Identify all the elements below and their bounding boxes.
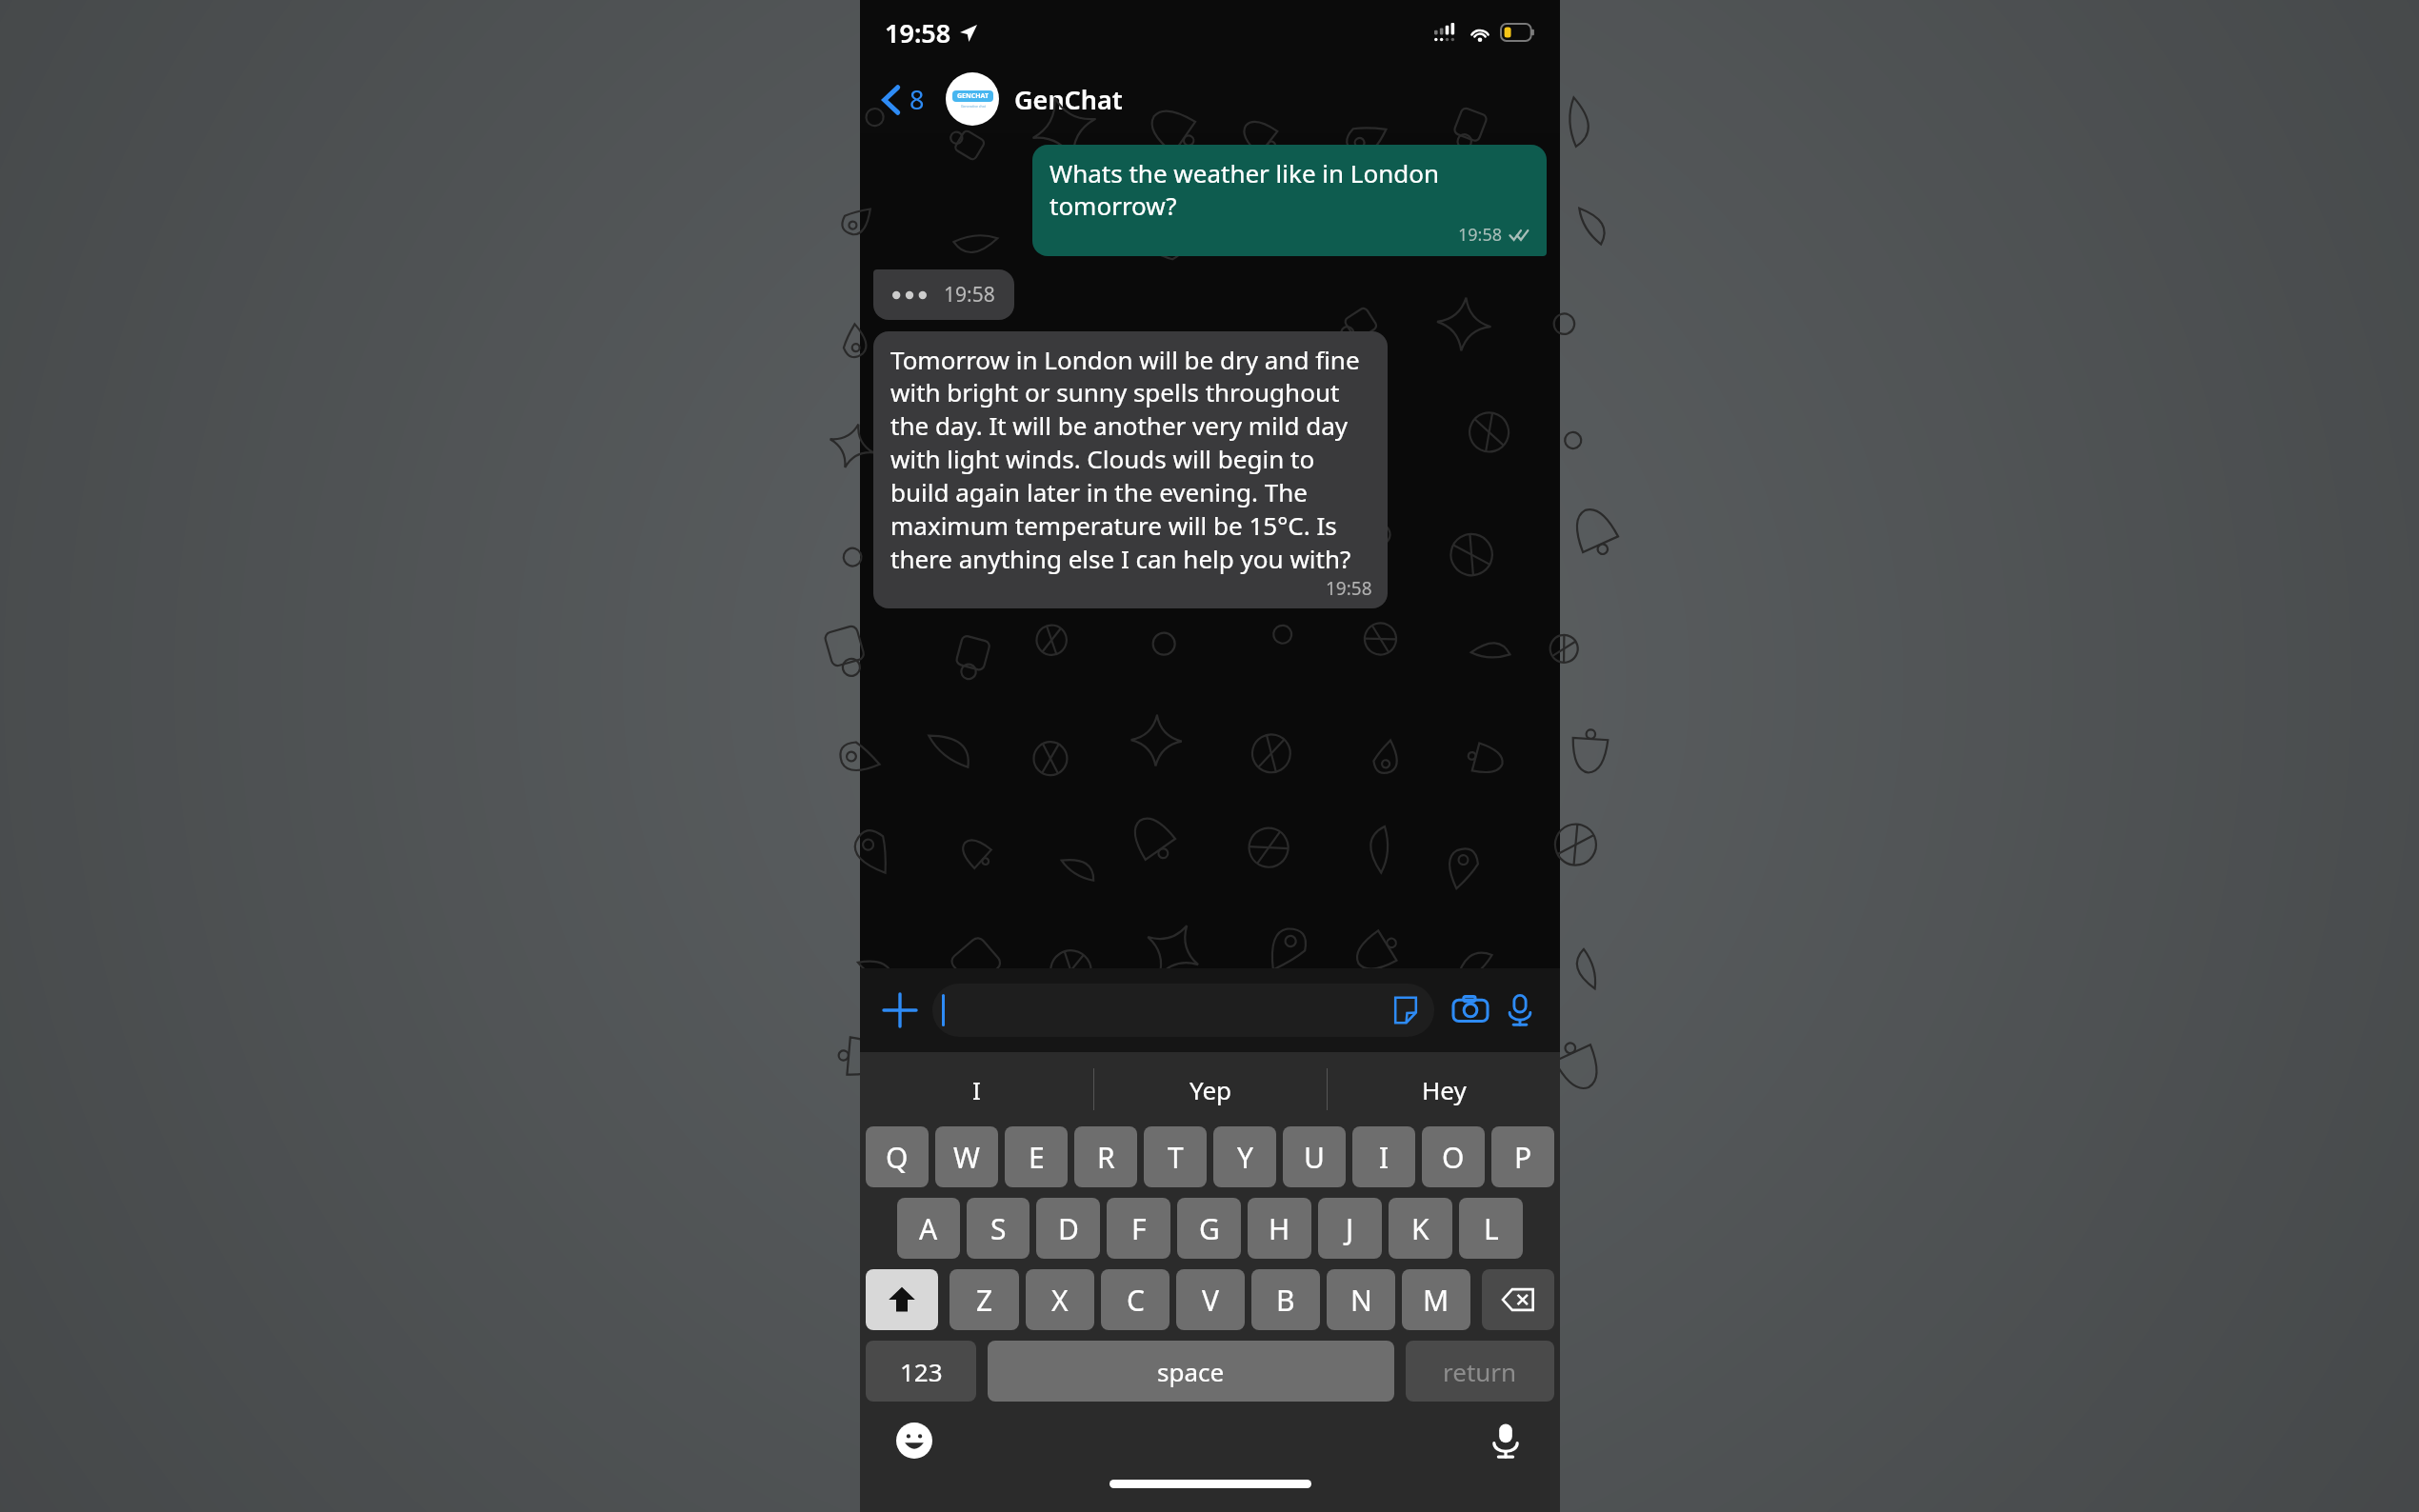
staticText: Hey [1422, 1073, 1467, 1106]
staticText: I [972, 1073, 981, 1106]
staticText: I [1379, 1138, 1389, 1177]
button[interactable]: C [1101, 1269, 1170, 1330]
staticText: GENCHAT [957, 91, 989, 101]
staticText: N [1350, 1281, 1372, 1320]
staticText: O [1442, 1138, 1465, 1177]
staticText: J [1346, 1209, 1354, 1248]
staticText: E [1029, 1138, 1045, 1177]
staticText: 19:58 [885, 15, 951, 50]
staticText: 19:58 [1458, 223, 1503, 247]
staticText: T [1168, 1138, 1184, 1177]
staticText: S [990, 1209, 1007, 1248]
button[interactable]: Attach [875, 985, 925, 1035]
button[interactable]: Shift [866, 1269, 938, 1330]
button[interactable]: F [1107, 1198, 1170, 1259]
button[interactable]: I [860, 1052, 1093, 1126]
staticText: H [1269, 1209, 1290, 1248]
button[interactable]: P [1491, 1126, 1554, 1187]
button[interactable]: N [1327, 1269, 1395, 1330]
button[interactable]: W [935, 1126, 998, 1187]
button[interactable]: Stickers [1389, 993, 1423, 1027]
staticText: return [1443, 1355, 1517, 1388]
staticText: Whats the weather like in London tomorro… [1050, 156, 1531, 222]
staticText: P [1514, 1138, 1532, 1177]
button[interactable]: 123 [866, 1341, 976, 1402]
button[interactable]: Yep [1094, 1052, 1327, 1126]
staticText: V [1202, 1281, 1219, 1320]
button[interactable]: Backspace [1482, 1269, 1554, 1330]
button[interactable]: L [1459, 1198, 1523, 1259]
button[interactable]: R [1074, 1126, 1137, 1187]
staticText: Z [976, 1281, 993, 1320]
staticText: F [1131, 1209, 1147, 1248]
button[interactable]: Whats the weather like in London tomorro… [1032, 145, 1547, 256]
staticText: space [1157, 1355, 1225, 1388]
staticText: Y [1237, 1138, 1253, 1177]
button[interactable]: Emoji [889, 1415, 940, 1466]
button[interactable]: D [1036, 1198, 1100, 1259]
staticText: X [1051, 1281, 1069, 1320]
button[interactable]: V [1176, 1269, 1245, 1330]
button[interactable]: Z [950, 1269, 1019, 1330]
button[interactable]: space [988, 1341, 1394, 1402]
staticText: K [1411, 1209, 1429, 1248]
button[interactable]: T [1144, 1126, 1207, 1187]
staticText: G [1199, 1209, 1220, 1248]
button[interactable]: B [1251, 1269, 1320, 1330]
staticText: U [1304, 1138, 1325, 1177]
staticText: 8 [910, 82, 925, 117]
staticText: L [1484, 1209, 1499, 1248]
staticText: W [953, 1138, 980, 1177]
button[interactable]: Stickers [932, 984, 1434, 1037]
staticText: B [1276, 1281, 1295, 1320]
staticText: D [1058, 1209, 1079, 1248]
button[interactable]: H [1248, 1198, 1311, 1259]
staticText: GenChat [1014, 82, 1123, 117]
staticText: C [1127, 1281, 1145, 1320]
button[interactable]: K [1389, 1198, 1452, 1259]
staticText: Yep [1190, 1073, 1232, 1106]
button[interactable]: Tomorrow in London will be dry and fine … [873, 331, 1388, 608]
staticText: 19:58 [1326, 576, 1372, 601]
staticText: Generative chat [961, 104, 986, 109]
button[interactable]: S [967, 1198, 1030, 1259]
staticText: Tomorrow in London will be dry and fine … [890, 343, 1372, 576]
staticText: R [1097, 1138, 1115, 1177]
button[interactable]: M [1402, 1269, 1470, 1330]
button[interactable]: 19:58 [873, 269, 1014, 320]
button[interactable]: Dictation [1480, 1415, 1531, 1466]
button[interactable]: E [1005, 1126, 1068, 1187]
button[interactable]: Hey [1328, 1052, 1560, 1126]
button[interactable]: I [1352, 1126, 1415, 1187]
staticText: 123 [900, 1355, 943, 1388]
button[interactable]: Q [866, 1126, 929, 1187]
button[interactable]: X [1026, 1269, 1094, 1330]
button[interactable]: Voice message [1495, 985, 1545, 1035]
button[interactable]: GENCHAT [946, 69, 1123, 129]
button[interactable]: return [1406, 1341, 1554, 1402]
button[interactable]: A [897, 1198, 960, 1259]
button[interactable]: Back, 8 unread [877, 76, 930, 123]
button[interactable]: J [1318, 1198, 1382, 1259]
button[interactable]: Y [1213, 1126, 1276, 1187]
staticText: Q [886, 1138, 909, 1177]
button[interactable]: G [1177, 1198, 1241, 1259]
staticText: A [919, 1209, 938, 1248]
staticText: 19:58 [944, 281, 995, 308]
button[interactable]: Camera [1446, 985, 1495, 1035]
staticText: M [1423, 1281, 1449, 1320]
button[interactable]: U [1283, 1126, 1346, 1187]
button[interactable]: O [1422, 1126, 1485, 1187]
